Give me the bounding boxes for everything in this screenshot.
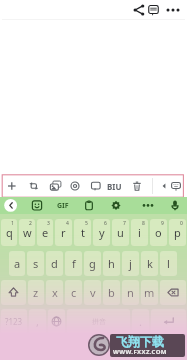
staticText: 2 [29,220,32,227]
button[interactable]: a [9,251,25,276]
button[interactable]: p [169,219,186,246]
button[interactable]: Change keyboard [48,309,65,334]
button[interactable]: i [131,219,148,246]
staticText: t [81,225,85,240]
staticText: y [99,225,105,240]
button[interactable]: c [65,280,82,305]
staticText: ?123 [5,316,23,327]
button[interactable]: GIF [55,197,71,214]
button[interactable]: k [141,251,158,276]
button[interactable]: v [84,280,101,305]
staticText: v [90,285,96,300]
button[interactable]: , [29,309,46,334]
staticText: c [71,285,77,300]
staticText: o [155,225,162,240]
staticText: 5 [85,220,88,227]
staticText: GIF [57,201,69,211]
button[interactable]: b [103,280,120,305]
staticText: 拼音 [92,317,106,326]
button[interactable]: ?123 [1,309,27,334]
staticText: d [51,256,58,271]
button[interactable]: t [74,219,91,246]
button[interactable]: Shift [1,280,26,305]
button[interactable]: o [150,219,167,246]
staticText: m [144,285,155,300]
staticText: 8 [142,220,145,227]
button[interactable]: More options [165,2,181,18]
staticText: f [72,256,76,271]
staticText: n [127,285,134,300]
staticText: 4 [66,220,69,227]
button[interactable]: w [19,219,35,246]
button[interactable]: m [141,280,158,305]
button[interactable]: n [122,280,139,305]
staticText: 0 [180,220,183,227]
staticText: b [108,285,115,300]
staticText: r [61,225,66,240]
button[interactable]: s [27,251,44,276]
staticText: e [42,225,49,240]
staticText: 9 [161,220,164,227]
staticText: a [14,256,21,271]
button[interactable]: Enter [151,309,186,334]
staticText: . [139,314,142,329]
staticText: 6 [104,220,107,227]
button[interactable]: j [122,251,139,276]
staticText: w [23,225,32,240]
staticText: q [6,225,13,240]
staticText: h [108,256,115,271]
button[interactable]: d [46,251,63,276]
button[interactable]: Backspace [160,280,186,305]
staticText: k [147,256,153,271]
button[interactable]: g [84,251,101,276]
button[interactable]: Space [67,309,130,334]
staticText: 7 [123,220,126,227]
button[interactable]: z [28,280,44,305]
button[interactable]: f [65,251,82,276]
staticText: p [174,225,181,240]
staticText: 飞翔下载 [116,334,164,349]
staticText: 3 [47,220,50,227]
staticText: s [33,256,39,271]
button[interactable]: y [93,219,110,246]
staticText: BIU [107,181,122,192]
staticText: g [89,256,96,271]
button[interactable]: BIU [105,176,123,196]
staticText: 1 [11,220,14,227]
button[interactable]: Comments [146,2,162,18]
staticText: u [117,225,124,240]
staticText: WWW.FXXZ.COM [113,348,167,356]
button[interactable]: h [103,251,120,276]
staticText: x [52,285,58,300]
button[interactable]: Share [131,2,147,18]
staticText: l [167,256,170,271]
staticText: j [129,256,132,271]
staticText: , [36,314,39,329]
button[interactable]: e [37,219,53,246]
button[interactable]: l [160,251,177,276]
staticText: i [138,225,141,240]
button[interactable]: x [46,280,63,305]
button[interactable]: r [55,219,72,246]
button[interactable]: . [132,309,149,334]
button[interactable]: u [112,219,129,246]
button[interactable]: q [1,219,17,246]
staticText: z [33,285,39,300]
